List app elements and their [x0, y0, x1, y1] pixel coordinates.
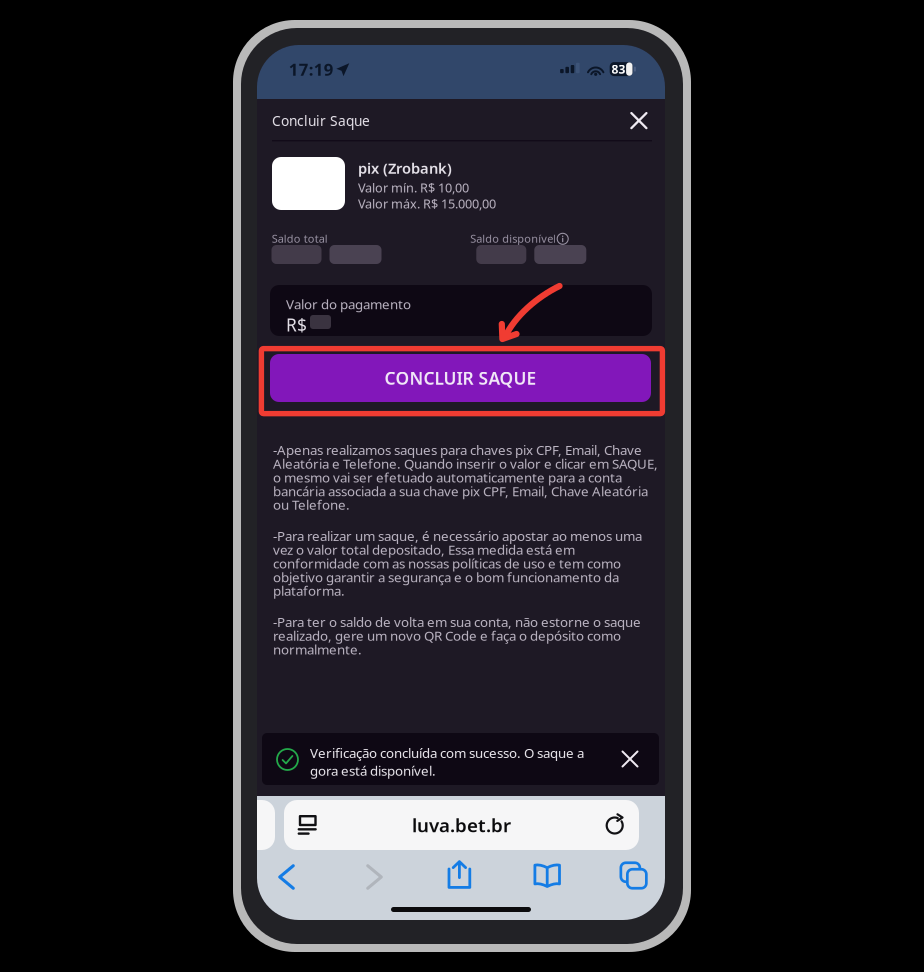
- staticText: Valor máx. R$ 15.000,00: [358, 195, 496, 212]
- staticText: Concluir Saque: [272, 111, 370, 130]
- button[interactable]: Abas: [610, 852, 658, 898]
- staticText: Verificação concluída com sucesso. O saq…: [310, 744, 584, 779]
- button[interactable]: Avançar: [350, 854, 398, 900]
- button[interactable]: Fechar: [621, 103, 657, 139]
- button[interactable]: Voltar: [262, 854, 310, 900]
- button[interactable]: CONCLUIR SAQUE: [270, 354, 651, 402]
- button[interactable]: Compartilhar: [435, 851, 483, 897]
- staticText: pix (Zrobank): [358, 158, 452, 178]
- staticText: Valor do pagamento: [286, 295, 411, 313]
- staticText: 17:19: [289, 58, 334, 81]
- staticText: R$: [286, 313, 307, 337]
- button[interactable]: luva.bet.br: [284, 800, 639, 850]
- staticText: Valor mín. R$ 10,00: [358, 179, 469, 196]
- staticText: -Apenas realizamos saques para chaves pi…: [273, 441, 658, 513]
- staticText: -Para realizar um saque, é necessário ap…: [273, 527, 642, 599]
- button[interactable]: Favoritos: [523, 853, 571, 899]
- button[interactable]: Fechar aviso: [614, 743, 646, 775]
- staticText: CONCLUIR SAQUE: [384, 366, 536, 390]
- staticText: 83: [612, 61, 626, 77]
- staticText: Saldo total: [272, 231, 328, 246]
- staticText: Saldo disponível: [470, 231, 556, 246]
- staticText: -Para ter o saldo de volta em sua conta,…: [273, 613, 641, 658]
- staticText: luva.bet.br: [412, 812, 511, 838]
